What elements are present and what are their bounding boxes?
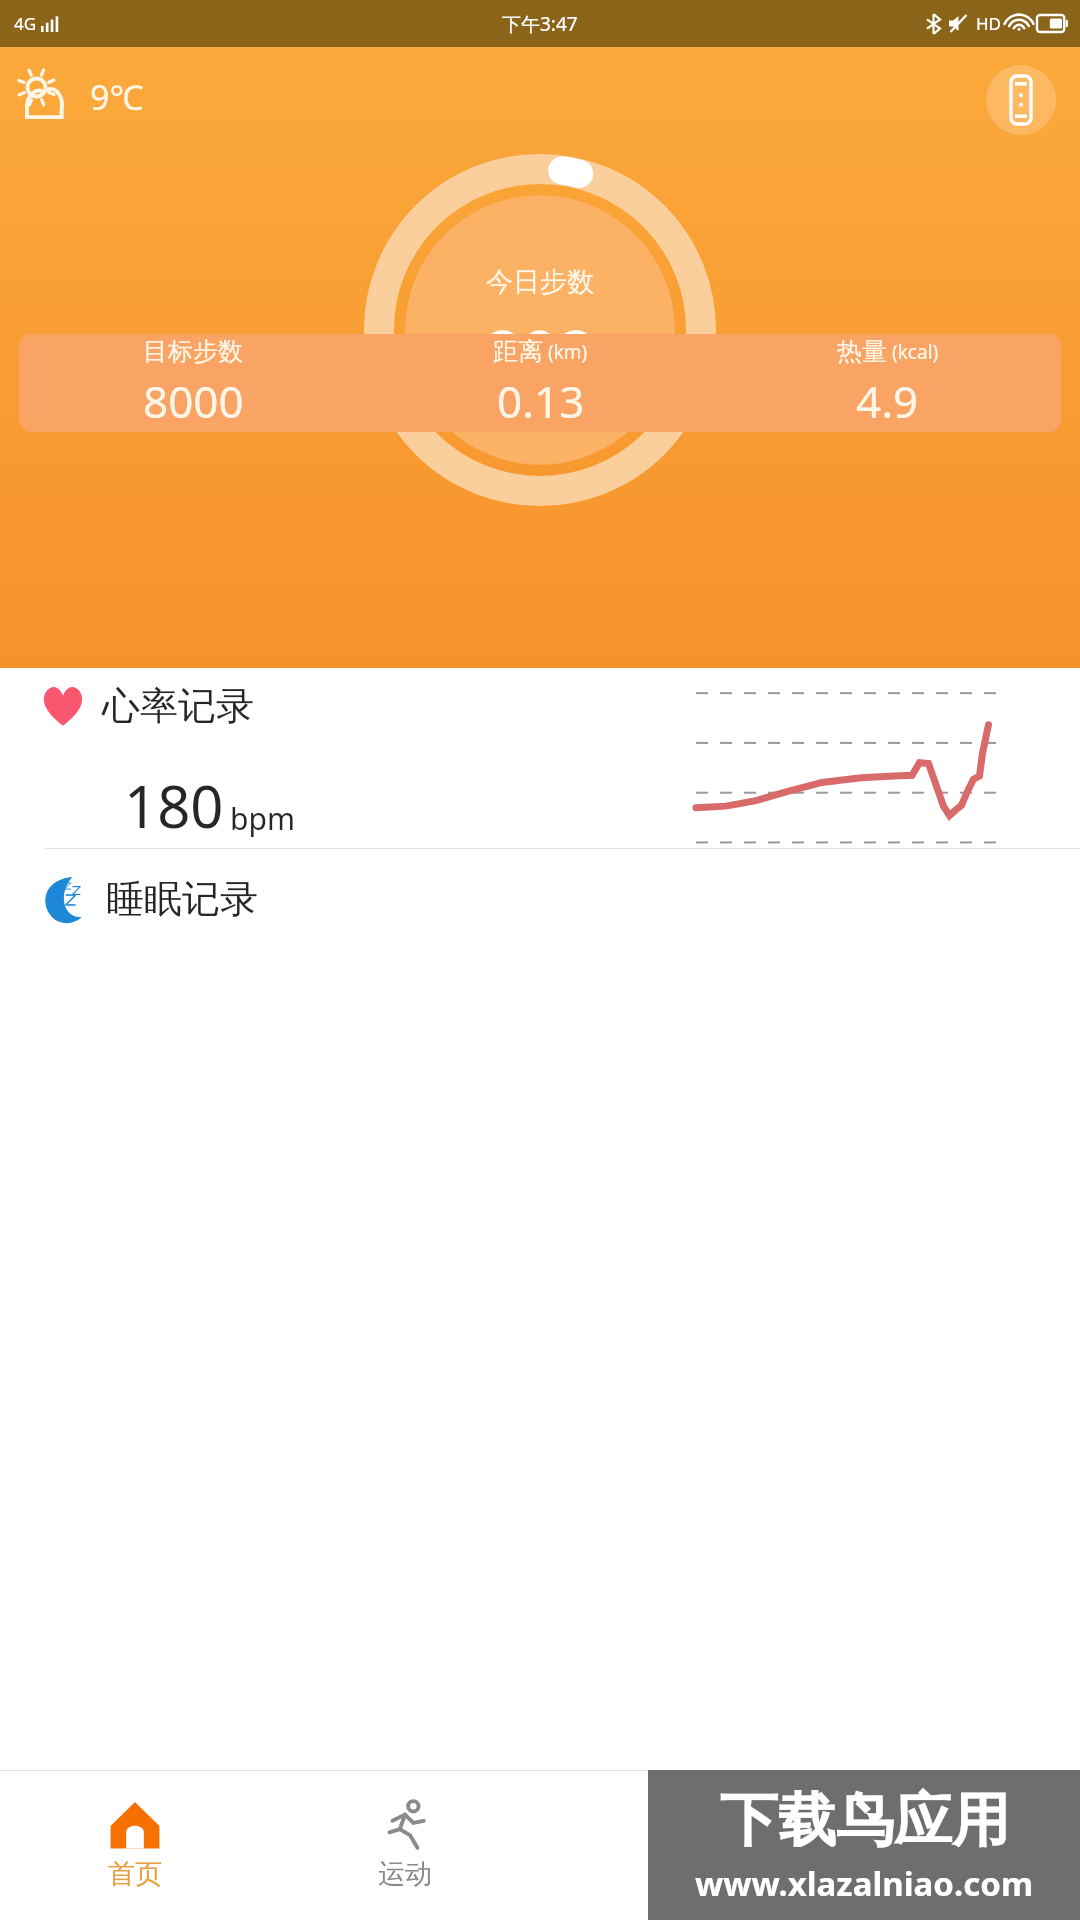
staticText: 4.9: [856, 371, 919, 431]
staticText: www.xlazalniao.com: [695, 1861, 1034, 1906]
staticText: 心率记录: [102, 682, 254, 730]
staticText: 0.13: [497, 371, 585, 431]
staticText: 今日步数: [486, 265, 594, 299]
staticText: 睡眠记录: [106, 875, 258, 923]
staticText: (km): [548, 339, 588, 365]
staticText: 我的: [918, 1857, 972, 1891]
button[interactable]: My band: [986, 65, 1056, 135]
button[interactable]: 设置: [540, 1770, 810, 1920]
staticText: 180: [124, 766, 224, 845]
staticText: 距离: [493, 336, 543, 367]
staticText: HD: [976, 12, 1002, 35]
staticText: (kcal): [892, 339, 939, 365]
button[interactable]: 今日步数: [364, 154, 716, 506]
staticText: 下午3:47: [502, 11, 578, 37]
button[interactable]: 目标步数: [19, 334, 1061, 432]
staticText: 下载鸟应用: [720, 1784, 1010, 1857]
button[interactable]: 心率记录: [0, 668, 1080, 848]
staticText: 4G: [14, 12, 37, 35]
staticText: 8000: [143, 371, 244, 431]
button[interactable]: 运动: [270, 1770, 540, 1920]
staticText: 首页: [108, 1857, 162, 1891]
staticText: 运动: [378, 1857, 432, 1891]
button[interactable]: 首页: [0, 1770, 270, 1920]
staticText: 202: [485, 309, 595, 396]
button[interactable]: 9℃: [18, 69, 144, 125]
staticText: 9℃: [90, 74, 144, 120]
staticText: bpm: [230, 798, 295, 839]
button[interactable]: 我的: [810, 1770, 1080, 1920]
staticText: 设置: [648, 1857, 702, 1891]
button[interactable]: 睡眠记录: [0, 849, 1080, 948]
staticText: 目标步数: [143, 336, 243, 367]
staticText: 热量: [837, 336, 887, 367]
